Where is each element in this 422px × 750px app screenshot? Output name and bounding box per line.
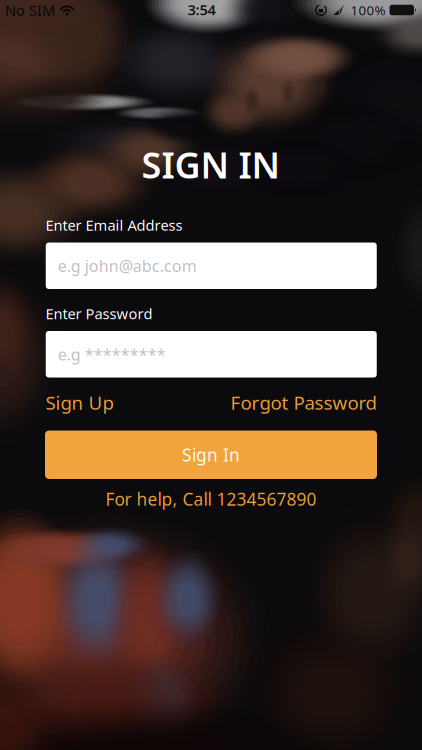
button[interactable]: Forgot Password [230, 390, 376, 415]
staticText: e.g ********* [58, 344, 166, 365]
staticText: No SIM [5, 0, 55, 20]
staticText: Enter Email Address [45, 215, 182, 235]
button[interactable]: Sign In [45, 430, 377, 479]
staticText: For help, Call 1234567890 [105, 487, 316, 510]
button[interactable]: For help, Call 1234567890 [105, 487, 316, 510]
staticText: Forgot Password [230, 390, 376, 415]
staticText: e.g john@abc.com [58, 255, 197, 276]
staticText: Enter Password [45, 304, 152, 323]
button[interactable]: Sign Up [45, 390, 113, 415]
staticText: Sign In [182, 443, 240, 466]
staticText: 3:54 [187, 0, 215, 19]
staticText: SIGN IN [141, 141, 280, 188]
staticText: 100% [350, 1, 385, 19]
staticText: Sign Up [45, 390, 113, 415]
